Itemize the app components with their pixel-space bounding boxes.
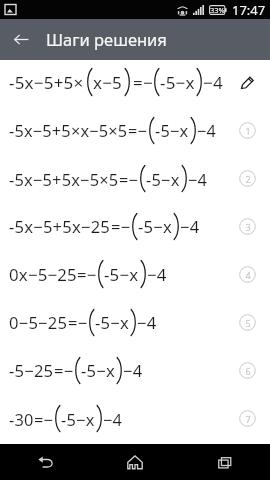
staticText: −4 [180,215,200,238]
staticText: -5x−5+5×x−5×5 [9,120,128,142]
staticText: 33% [210,5,225,15]
button[interactable]: Home [90,444,180,480]
staticText: −4 [203,71,223,94]
staticText: −4 [123,359,143,382]
button[interactable]: 5 [239,314,256,331]
staticText: -5−x [95,311,129,334]
staticText: 17:47 [232,1,266,19]
staticText: −4 [137,311,157,334]
button[interactable]: 4 [239,266,256,283]
button[interactable]: Back [0,444,90,480]
staticText: Шаги решения [46,28,167,50]
staticText: −4 [103,408,123,430]
staticText: -5−x [81,359,115,382]
staticText: -5−25 [9,359,54,382]
staticText: =− [111,215,131,238]
staticText: 0x−5−25 [9,263,77,286]
staticText: =− [128,120,148,142]
staticText: 3 [245,221,251,233]
staticText: =− [133,71,153,94]
staticText: -5−x [160,71,195,94]
button[interactable]: -5x−5+5× [0,60,270,108]
button[interactable]: Edit [240,75,255,90]
staticText: =− [68,311,88,334]
staticText: 6 [245,365,251,377]
staticText: =− [34,408,54,430]
button[interactable]: -5x−5+5x−5×5 [0,156,270,204]
button[interactable]: -30 [0,396,270,444]
button[interactable]: 0−5−25 [0,300,270,348]
button[interactable]: 6 [239,362,256,379]
staticText: -5−x [146,168,180,190]
button[interactable]: Back [0,19,43,60]
button[interactable]: -5x−5+5×x−5×5 [0,108,270,156]
staticText: −4 [197,120,217,142]
button[interactable]: -5x−5+5x−25 [0,204,270,252]
staticText: 0−5−25 [9,311,68,334]
staticText: =− [54,359,74,382]
staticText: 5 [245,317,251,329]
staticText: -5x−5+5× [9,71,84,94]
staticText: −4 [188,168,208,190]
staticText: -30 [9,408,34,430]
staticText: -5−x [155,120,189,142]
staticText: 4 [245,269,251,281]
staticText: −4 [147,263,167,286]
staticText: -5−x [138,215,172,238]
button[interactable]: 7 [239,410,256,427]
staticText: =− [77,263,97,286]
button[interactable]: -5−25 [0,348,270,396]
staticText: 7 [245,413,251,425]
staticText: -5x−5+5x−25 [9,215,111,238]
staticText: -5−x [61,408,95,430]
staticText: 2 [245,173,251,185]
button[interactable]: 0x−5−25 [0,252,270,300]
staticText: 1 [245,125,251,137]
button[interactable]: 3 [239,218,256,235]
staticText: =− [119,168,139,190]
button[interactable]: 2 [239,170,256,187]
staticText: -5−x [104,263,139,286]
button[interactable]: 1 [239,122,256,139]
staticText: x−5 [93,71,123,94]
button[interactable]: Recent apps [180,444,270,480]
staticText: -5x−5+5x−5×5 [9,168,119,190]
